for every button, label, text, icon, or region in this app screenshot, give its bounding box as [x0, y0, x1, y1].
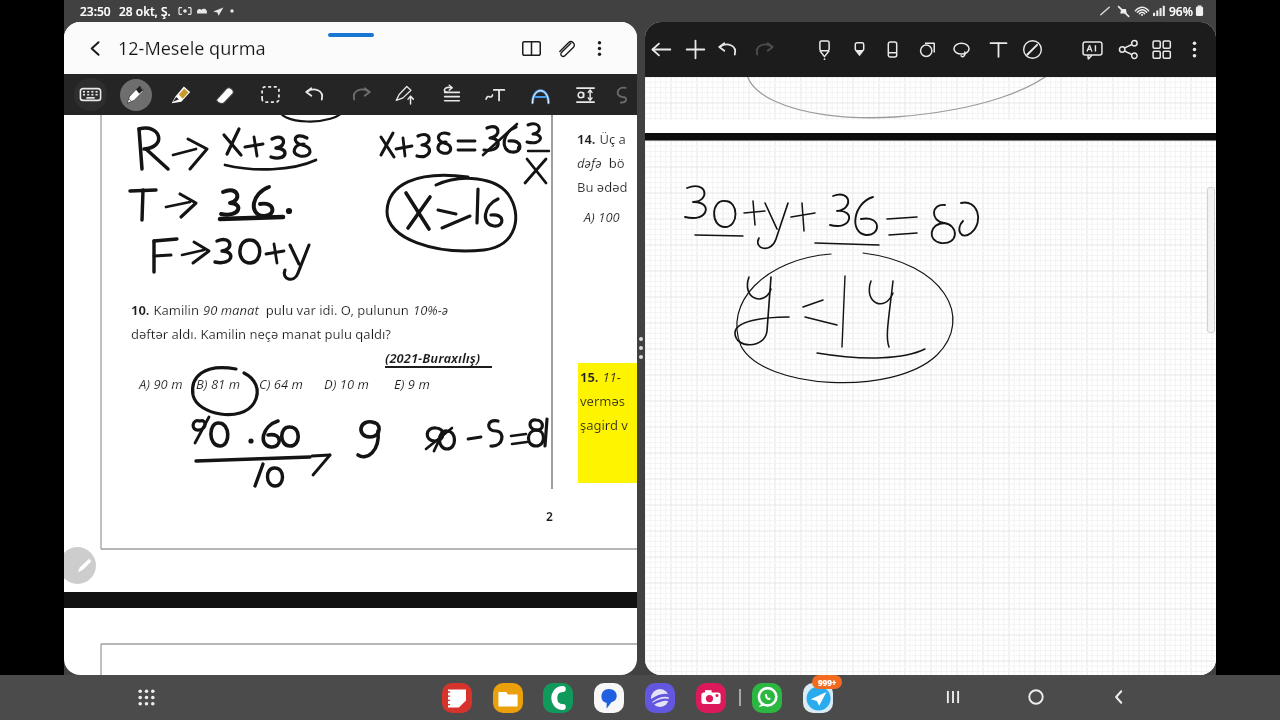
staticText: bö	[602, 154, 625, 172]
staticText: 15.	[580, 368, 599, 386]
button[interactable]: More options	[582, 31, 616, 65]
staticText: B) 81 m	[196, 375, 241, 393]
staticText: 14.	[577, 130, 596, 148]
button[interactable]: All apps	[124, 675, 169, 720]
staticText: E) 9 m	[394, 375, 430, 393]
staticText: C) 64 m	[259, 375, 303, 393]
staticText: Kamilin	[150, 301, 203, 319]
button[interactable]: Lasso	[946, 34, 977, 65]
button[interactable]: More options	[1179, 34, 1210, 65]
button[interactable]: Redo	[748, 34, 779, 65]
staticText: 10%-ə	[413, 301, 449, 319]
staticText: 23:50	[80, 3, 111, 19]
button[interactable]: Redo	[338, 74, 383, 115]
staticText: D) 10 m	[324, 375, 369, 393]
button[interactable]: Text size	[563, 74, 608, 115]
button[interactable]: Keyboard	[68, 74, 113, 115]
staticText: A) 100	[577, 208, 620, 226]
button[interactable]: My Files	[493, 683, 523, 713]
button[interactable]: Share	[1113, 34, 1144, 65]
staticText: dəfə	[577, 154, 602, 172]
staticText: 11-	[599, 368, 621, 386]
button[interactable]: Back	[78, 31, 112, 65]
button[interactable]: AI assist	[518, 74, 563, 115]
button[interactable]: Eraser	[877, 34, 908, 65]
button[interactable]: Pen tool	[64, 547, 96, 584]
button[interactable]: Messages	[594, 683, 624, 713]
button[interactable]: Telegram	[803, 683, 833, 713]
staticText: 999+	[818, 677, 837, 688]
button[interactable]: Home	[1022, 683, 1050, 711]
staticText: Üç a	[596, 130, 626, 148]
button[interactable]: Pen settings	[383, 74, 428, 115]
button[interactable]: Highlighter	[158, 74, 203, 115]
button[interactable]: AI assist	[1077, 34, 1108, 65]
button[interactable]: Recents	[939, 683, 967, 711]
button[interactable]: Shape	[608, 74, 637, 115]
button[interactable]: Add	[680, 34, 711, 65]
button[interactable]: Select	[248, 74, 293, 115]
staticText: dəftər aldı. Kamilin neçə manat pulu qal…	[131, 325, 392, 343]
button[interactable]: Clear all	[1017, 34, 1048, 65]
staticText: A) 90 m	[139, 375, 183, 393]
staticText: (2021-Buraxılış)	[385, 349, 481, 367]
staticText: 90 manat	[203, 301, 259, 319]
button[interactable]: Text	[983, 34, 1014, 65]
button[interactable]: Camera	[696, 683, 726, 713]
staticText: 96%	[1169, 3, 1193, 19]
button[interactable]: Eraser	[203, 74, 248, 115]
button[interactable]: Samsung Notes	[442, 683, 472, 713]
button[interactable]: Attach	[548, 31, 582, 65]
button[interactable]: Internet	[645, 683, 675, 713]
staticText: 10.	[131, 301, 150, 319]
button[interactable]: Undo	[293, 74, 338, 115]
button[interactable]: Phone	[543, 683, 573, 713]
button[interactable]: Text convert	[473, 74, 518, 115]
staticText: verməs	[580, 392, 626, 410]
staticText: şagird v	[580, 416, 628, 434]
button[interactable]: WhatsApp	[752, 683, 782, 713]
button[interactable]: View mode	[514, 31, 548, 65]
staticText: pulu var idi. O, pulunun	[259, 301, 413, 319]
button[interactable]: Pen	[809, 34, 840, 65]
button[interactable]: Shape select	[912, 34, 943, 65]
button[interactable]: Undo	[713, 34, 744, 65]
button[interactable]: Align	[428, 74, 473, 115]
staticText: Bu ədəd	[577, 178, 628, 196]
staticText: 2	[546, 508, 553, 524]
staticText: 28 okt, Ş.	[119, 3, 171, 19]
button[interactable]: Pencil	[844, 34, 875, 65]
button[interactable]: Back	[1105, 683, 1133, 711]
button[interactable]: Layout	[1146, 34, 1177, 65]
button[interactable]: Back	[646, 34, 677, 65]
button[interactable]: Pen	[113, 74, 158, 115]
staticText: 12-Mesele qurma	[118, 36, 266, 61]
